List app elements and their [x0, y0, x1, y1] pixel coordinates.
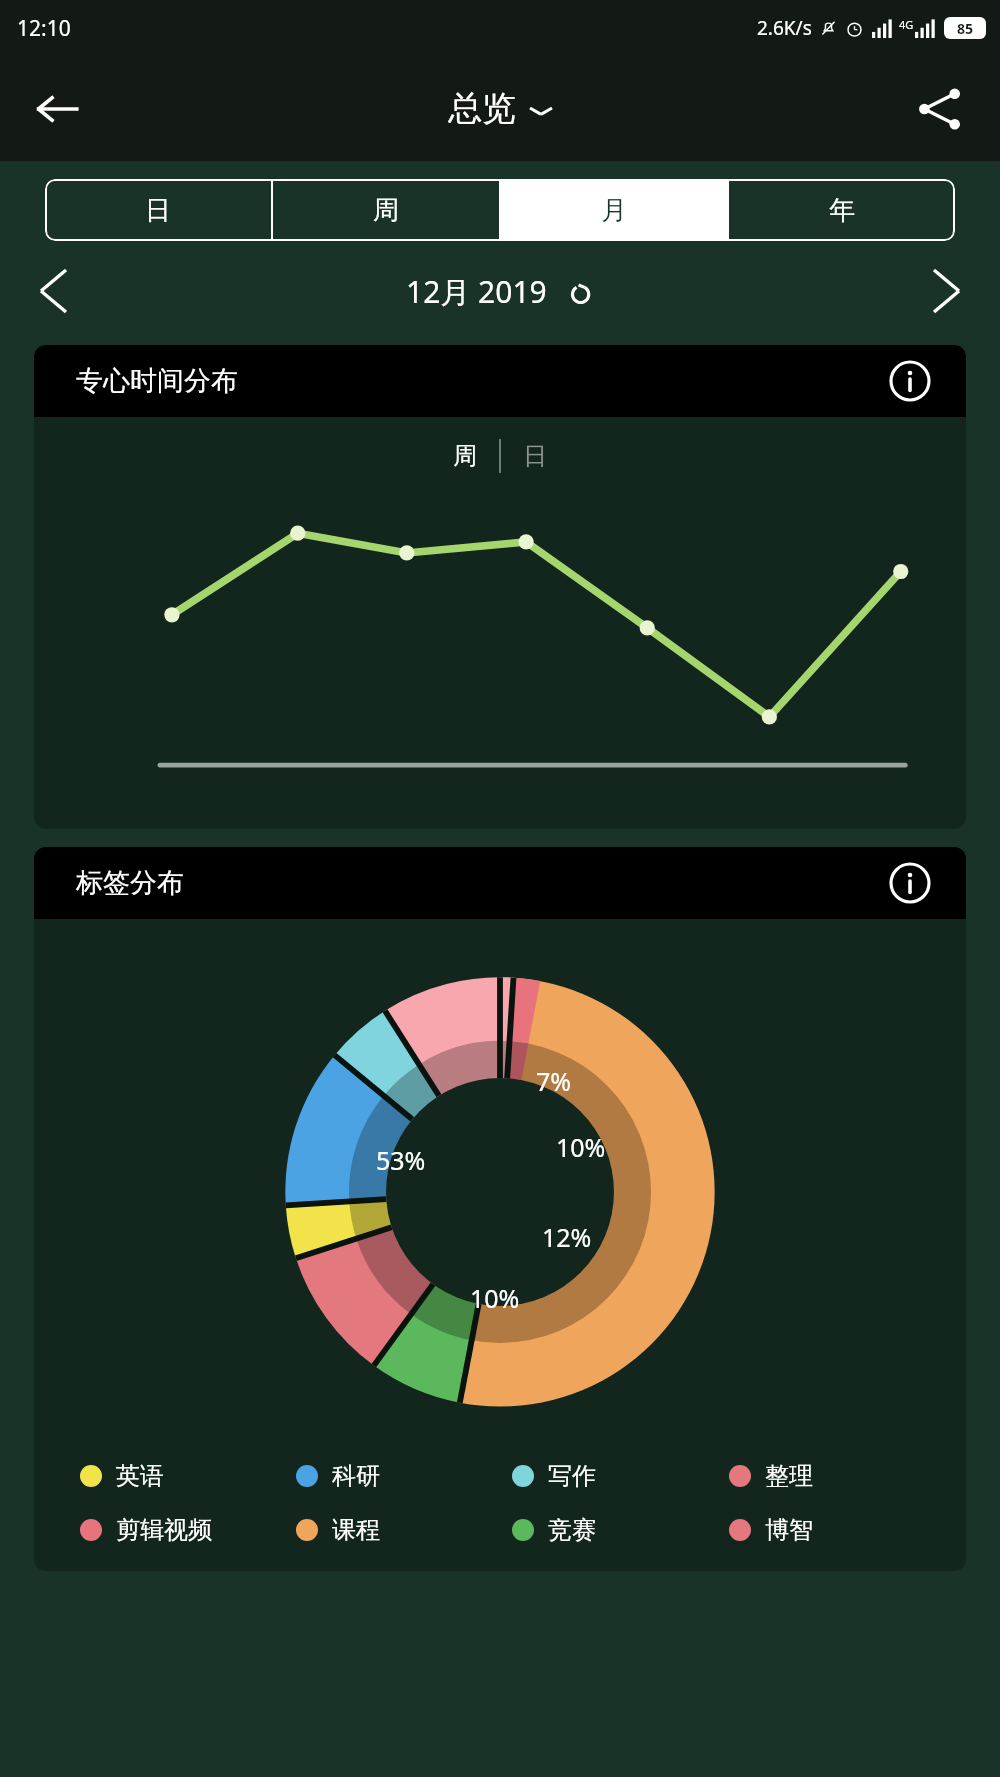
button[interactable]: Back	[28, 80, 86, 138]
staticText: 12月 2019	[406, 271, 547, 312]
button[interactable]: Previous	[24, 260, 86, 322]
button[interactable]: 总览	[448, 87, 552, 130]
staticText: 标签分布	[76, 866, 184, 900]
staticText: 周	[453, 441, 477, 471]
staticText: 剪辑视频	[116, 1515, 212, 1545]
button[interactable]: Info	[884, 355, 936, 407]
button[interactable]: 写作	[512, 1461, 729, 1491]
staticText: 科研	[332, 1461, 380, 1491]
staticText: 年	[829, 194, 855, 227]
button[interactable]: 科研	[296, 1461, 512, 1491]
button[interactable]: 周	[273, 179, 499, 241]
button[interactable]: 日	[523, 441, 547, 471]
staticText: 日	[523, 441, 547, 471]
button[interactable]: 博智	[729, 1515, 946, 1545]
button[interactable]: 月	[501, 179, 727, 241]
button[interactable]: Info	[884, 857, 936, 909]
staticText: 月	[601, 194, 627, 227]
staticText: 4G	[899, 17, 914, 32]
staticText: 12%	[542, 1220, 592, 1254]
staticText: 博智	[765, 1515, 813, 1545]
staticText: 日	[145, 194, 171, 227]
staticText: 10%	[470, 1281, 520, 1315]
staticText: 总览	[448, 87, 516, 130]
staticText: 竞赛	[548, 1515, 596, 1545]
button[interactable]: 周	[453, 441, 477, 471]
button[interactable]: 日	[45, 179, 271, 241]
staticText: 85	[957, 19, 974, 38]
staticText: 英语	[116, 1461, 164, 1491]
staticText: 专心时间分布	[76, 364, 238, 398]
button[interactable]: 竞赛	[512, 1515, 729, 1545]
staticText: 53%	[376, 1143, 426, 1177]
button[interactable]: 课程	[296, 1515, 512, 1545]
button[interactable]: 整理	[729, 1461, 946, 1491]
staticText: 周	[373, 194, 399, 227]
button[interactable]: Next	[914, 260, 976, 322]
staticText: 2.6K/s	[757, 15, 812, 41]
staticText: 整理	[765, 1461, 813, 1491]
staticText: 10%	[556, 1130, 606, 1164]
button[interactable]: Share	[910, 79, 970, 139]
staticText: 7%	[536, 1064, 572, 1098]
button[interactable]: 剪辑视频	[80, 1515, 296, 1545]
button[interactable]: 年	[729, 179, 955, 241]
staticText: 写作	[548, 1461, 596, 1491]
button[interactable]: 12月 2019	[86, 271, 914, 312]
staticText: 12:10	[17, 14, 71, 43]
staticText: 课程	[332, 1515, 380, 1545]
button[interactable]: 英语	[80, 1461, 296, 1491]
